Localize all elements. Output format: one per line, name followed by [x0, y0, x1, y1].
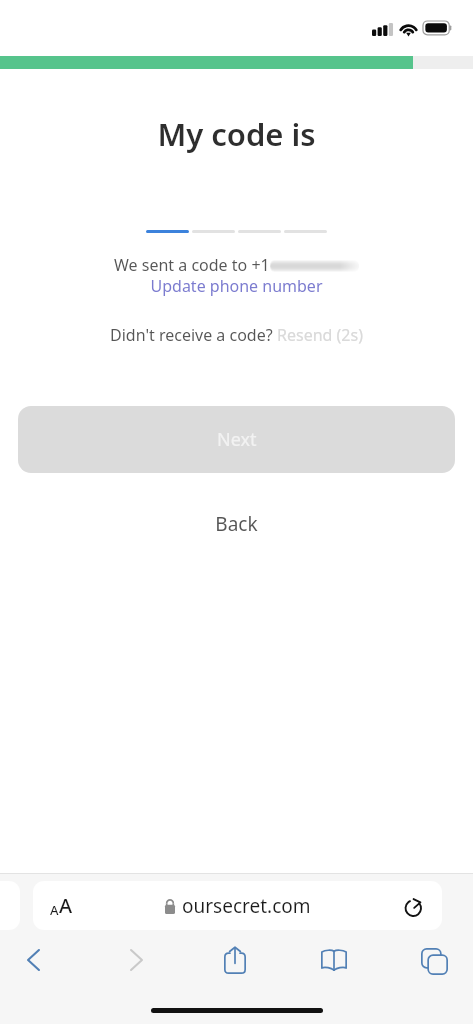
staticText: Next	[217, 427, 257, 452]
button[interactable]: Back	[7, 934, 59, 986]
button[interactable]: Tabs	[408, 934, 460, 986]
button[interactable]: Share	[209, 934, 261, 986]
staticText: A	[59, 892, 73, 919]
staticText: oursecret.com	[182, 893, 311, 919]
staticText: A	[50, 901, 59, 919]
button[interactable]: Back	[0, 511, 473, 537]
button[interactable]: Page settings, text size	[33, 881, 89, 930]
button[interactable]: Bookmarks	[308, 934, 360, 986]
staticText: We sent a code to +1	[114, 254, 270, 276]
button[interactable]: Page settings, text size	[33, 881, 442, 930]
staticText: My code is	[0, 113, 473, 155]
button[interactable]: Update phone number	[0, 275, 473, 297]
button[interactable]: Forward	[110, 934, 162, 986]
staticText: Didn't receive a code?	[110, 324, 277, 346]
button[interactable]: Reload page	[386, 881, 442, 930]
button[interactable]: Resend (2s)	[277, 324, 363, 346]
